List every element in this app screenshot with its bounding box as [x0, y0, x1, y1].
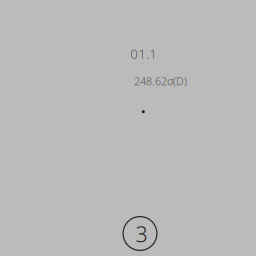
button[interactable]: Step 3 — [122, 215, 158, 251]
staticText: 248.62σ(D) — [134, 74, 187, 88]
staticText: 01.1 — [130, 45, 157, 62]
staticText: 3 — [135, 220, 147, 248]
